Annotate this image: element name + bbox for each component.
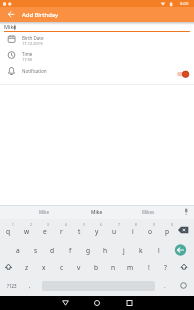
- button[interactable]: Mikes: [128, 205, 168, 219]
- staticText: Mike: [91, 209, 103, 216]
- staticText: .: [164, 282, 166, 290]
- button[interactable]: b: [88, 260, 105, 274]
- button[interactable]: [172, 241, 192, 259]
- staticText: n: [111, 263, 116, 272]
- staticText: f: [69, 246, 72, 255]
- button[interactable]: [55, 296, 77, 310]
- button[interactable]: i: [124, 224, 141, 238]
- staticText: k: [139, 246, 143, 255]
- staticText: v: [77, 263, 81, 272]
- staticText: q: [6, 227, 11, 236]
- staticText: u: [112, 227, 117, 236]
- button[interactable]: k: [132, 243, 149, 257]
- button[interactable]: [176, 278, 192, 293]
- button[interactable]: [172, 68, 190, 80]
- button[interactable]: [86, 296, 108, 310]
- staticText: 9: [153, 223, 155, 227]
- button[interactable]: [173, 221, 193, 238]
- button[interactable]: [118, 296, 140, 310]
- button[interactable]: r: [53, 224, 70, 238]
- button[interactable]: w: [18, 224, 35, 238]
- staticText: Add Birthday: [22, 11, 59, 19]
- button[interactable]: c: [53, 260, 70, 274]
- staticText: o: [148, 227, 152, 236]
- staticText: 8: [135, 223, 137, 227]
- staticText: 0: [171, 223, 173, 227]
- staticText: t: [78, 227, 81, 236]
- button[interactable]: e: [36, 224, 53, 238]
- staticText: Notification: [22, 68, 47, 74]
- staticText: g: [86, 246, 91, 255]
- button[interactable]: v: [70, 260, 87, 274]
- staticText: ?123: [7, 283, 17, 289]
- button[interactable]: [0, 33, 194, 48]
- staticText: c: [60, 263, 64, 272]
- button[interactable]: Mike: [4, 22, 190, 31]
- button[interactable]: [0, 66, 194, 81]
- staticText: e: [43, 227, 47, 236]
- staticText: 4: [65, 223, 67, 227]
- staticText: 17.12.2019: [22, 41, 43, 46]
- button[interactable]: h: [97, 243, 114, 257]
- button[interactable]: a: [9, 243, 26, 257]
- button[interactable]: ?123: [2, 279, 22, 293]
- staticText: x: [42, 263, 46, 272]
- staticText: Time: [22, 51, 33, 57]
- button[interactable]: u: [106, 224, 123, 238]
- staticText: 6: [100, 223, 102, 227]
- button[interactable]: ,: [23, 279, 37, 293]
- button[interactable]: y: [88, 224, 105, 238]
- staticText: 17:55: [22, 57, 33, 62]
- staticText: 8:00: [180, 1, 189, 7]
- button[interactable]: x: [35, 260, 52, 274]
- button[interactable]: [176, 259, 192, 275]
- staticText: 7: [118, 223, 120, 227]
- staticText: y: [95, 227, 99, 236]
- staticText: l: [158, 246, 160, 255]
- button[interactable]: [4, 8, 18, 21]
- staticText: 2: [30, 223, 32, 227]
- button[interactable]: .: [158, 279, 172, 293]
- button[interactable]: [0, 50, 194, 65]
- staticText: 3: [47, 223, 49, 227]
- button[interactable]: Mike: [24, 205, 64, 219]
- button[interactable]: [1, 259, 17, 275]
- button[interactable]: p: [159, 224, 176, 238]
- staticText: w: [24, 227, 30, 236]
- staticText: j: [123, 246, 125, 255]
- button[interactable]: ?: [157, 260, 174, 274]
- staticText: Mike: [4, 23, 17, 30]
- button[interactable]: j: [115, 243, 132, 257]
- button[interactable]: s: [27, 243, 44, 257]
- staticText: a: [16, 246, 20, 255]
- staticText: Mikes: [142, 209, 155, 215]
- button[interactable]: !: [140, 260, 157, 274]
- button[interactable]: f: [62, 243, 79, 257]
- button[interactable]: t: [71, 224, 88, 238]
- staticText: d: [50, 246, 55, 255]
- button[interactable]: q: [0, 224, 17, 238]
- staticText: Birth Date: [22, 35, 44, 41]
- staticText: ?: [164, 263, 167, 272]
- staticText: !: [148, 263, 150, 272]
- staticText: s: [34, 246, 38, 255]
- staticText: m: [127, 263, 134, 272]
- button[interactable]: z: [18, 260, 35, 274]
- staticText: p: [165, 227, 170, 236]
- button[interactable]: m: [122, 260, 139, 274]
- staticText: h: [103, 246, 108, 255]
- staticText: ,: [29, 282, 31, 290]
- staticText: r: [60, 227, 63, 236]
- button[interactable]: l: [150, 243, 167, 257]
- staticText: Mike: [39, 209, 49, 215]
- button[interactable]: Mike: [77, 205, 117, 219]
- staticText: 5: [83, 223, 85, 227]
- button[interactable]: n: [105, 260, 122, 274]
- button[interactable]: g: [80, 243, 97, 257]
- staticText: i: [132, 227, 134, 236]
- button[interactable]: o: [141, 224, 158, 238]
- button[interactable]: d: [44, 243, 61, 257]
- staticText: z: [25, 263, 29, 272]
- staticText: 1: [12, 223, 14, 227]
